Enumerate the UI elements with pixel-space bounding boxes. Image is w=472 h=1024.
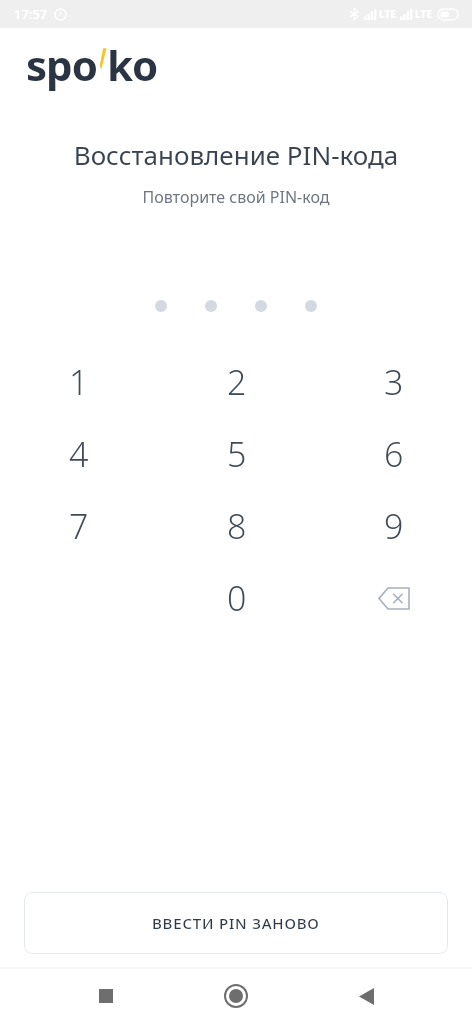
button[interactable]: 4: [0, 418, 158, 490]
button[interactable]: 1: [0, 346, 158, 418]
staticText: Повторите свой PIN-код: [0, 186, 472, 208]
button[interactable]: 5: [158, 418, 315, 490]
staticText: 17:57: [14, 5, 48, 23]
staticText: 4: [69, 431, 89, 477]
button[interactable]: 2: [158, 346, 315, 418]
button[interactable]: 9: [315, 490, 472, 562]
button[interactable]: 8: [158, 490, 315, 562]
staticText: 5: [227, 431, 247, 477]
staticText: 2: [227, 359, 247, 405]
staticText: 6: [384, 431, 404, 477]
button[interactable]: 3: [315, 346, 472, 418]
staticText: 1: [69, 359, 89, 405]
staticText: 9: [384, 503, 404, 549]
staticText: Восстановление PIN-кода: [0, 137, 472, 172]
staticText: 3: [384, 359, 404, 405]
button[interactable]: Home: [212, 972, 260, 1020]
button[interactable]: 0: [158, 562, 315, 634]
button[interactable]: Recents: [82, 972, 130, 1020]
staticText: 7: [69, 503, 89, 549]
staticText: spo: [26, 36, 97, 93]
other: Backspace: [372, 576, 416, 620]
staticText: 8: [227, 503, 247, 549]
button[interactable]: ВВЕСТИ PIN ЗАНОВО: [24, 892, 448, 954]
button[interactable]: 7: [0, 490, 158, 562]
button[interactable]: 6: [315, 418, 472, 490]
staticText: LTE: [415, 7, 432, 21]
button[interactable]: Back: [342, 972, 390, 1020]
button[interactable]: Backspace: [315, 562, 472, 634]
staticText: ВВЕСТИ PIN ЗАНОВО: [152, 913, 320, 933]
staticText: LTE: [379, 7, 396, 21]
staticText: 0: [227, 575, 247, 621]
staticText: ko: [107, 36, 158, 93]
